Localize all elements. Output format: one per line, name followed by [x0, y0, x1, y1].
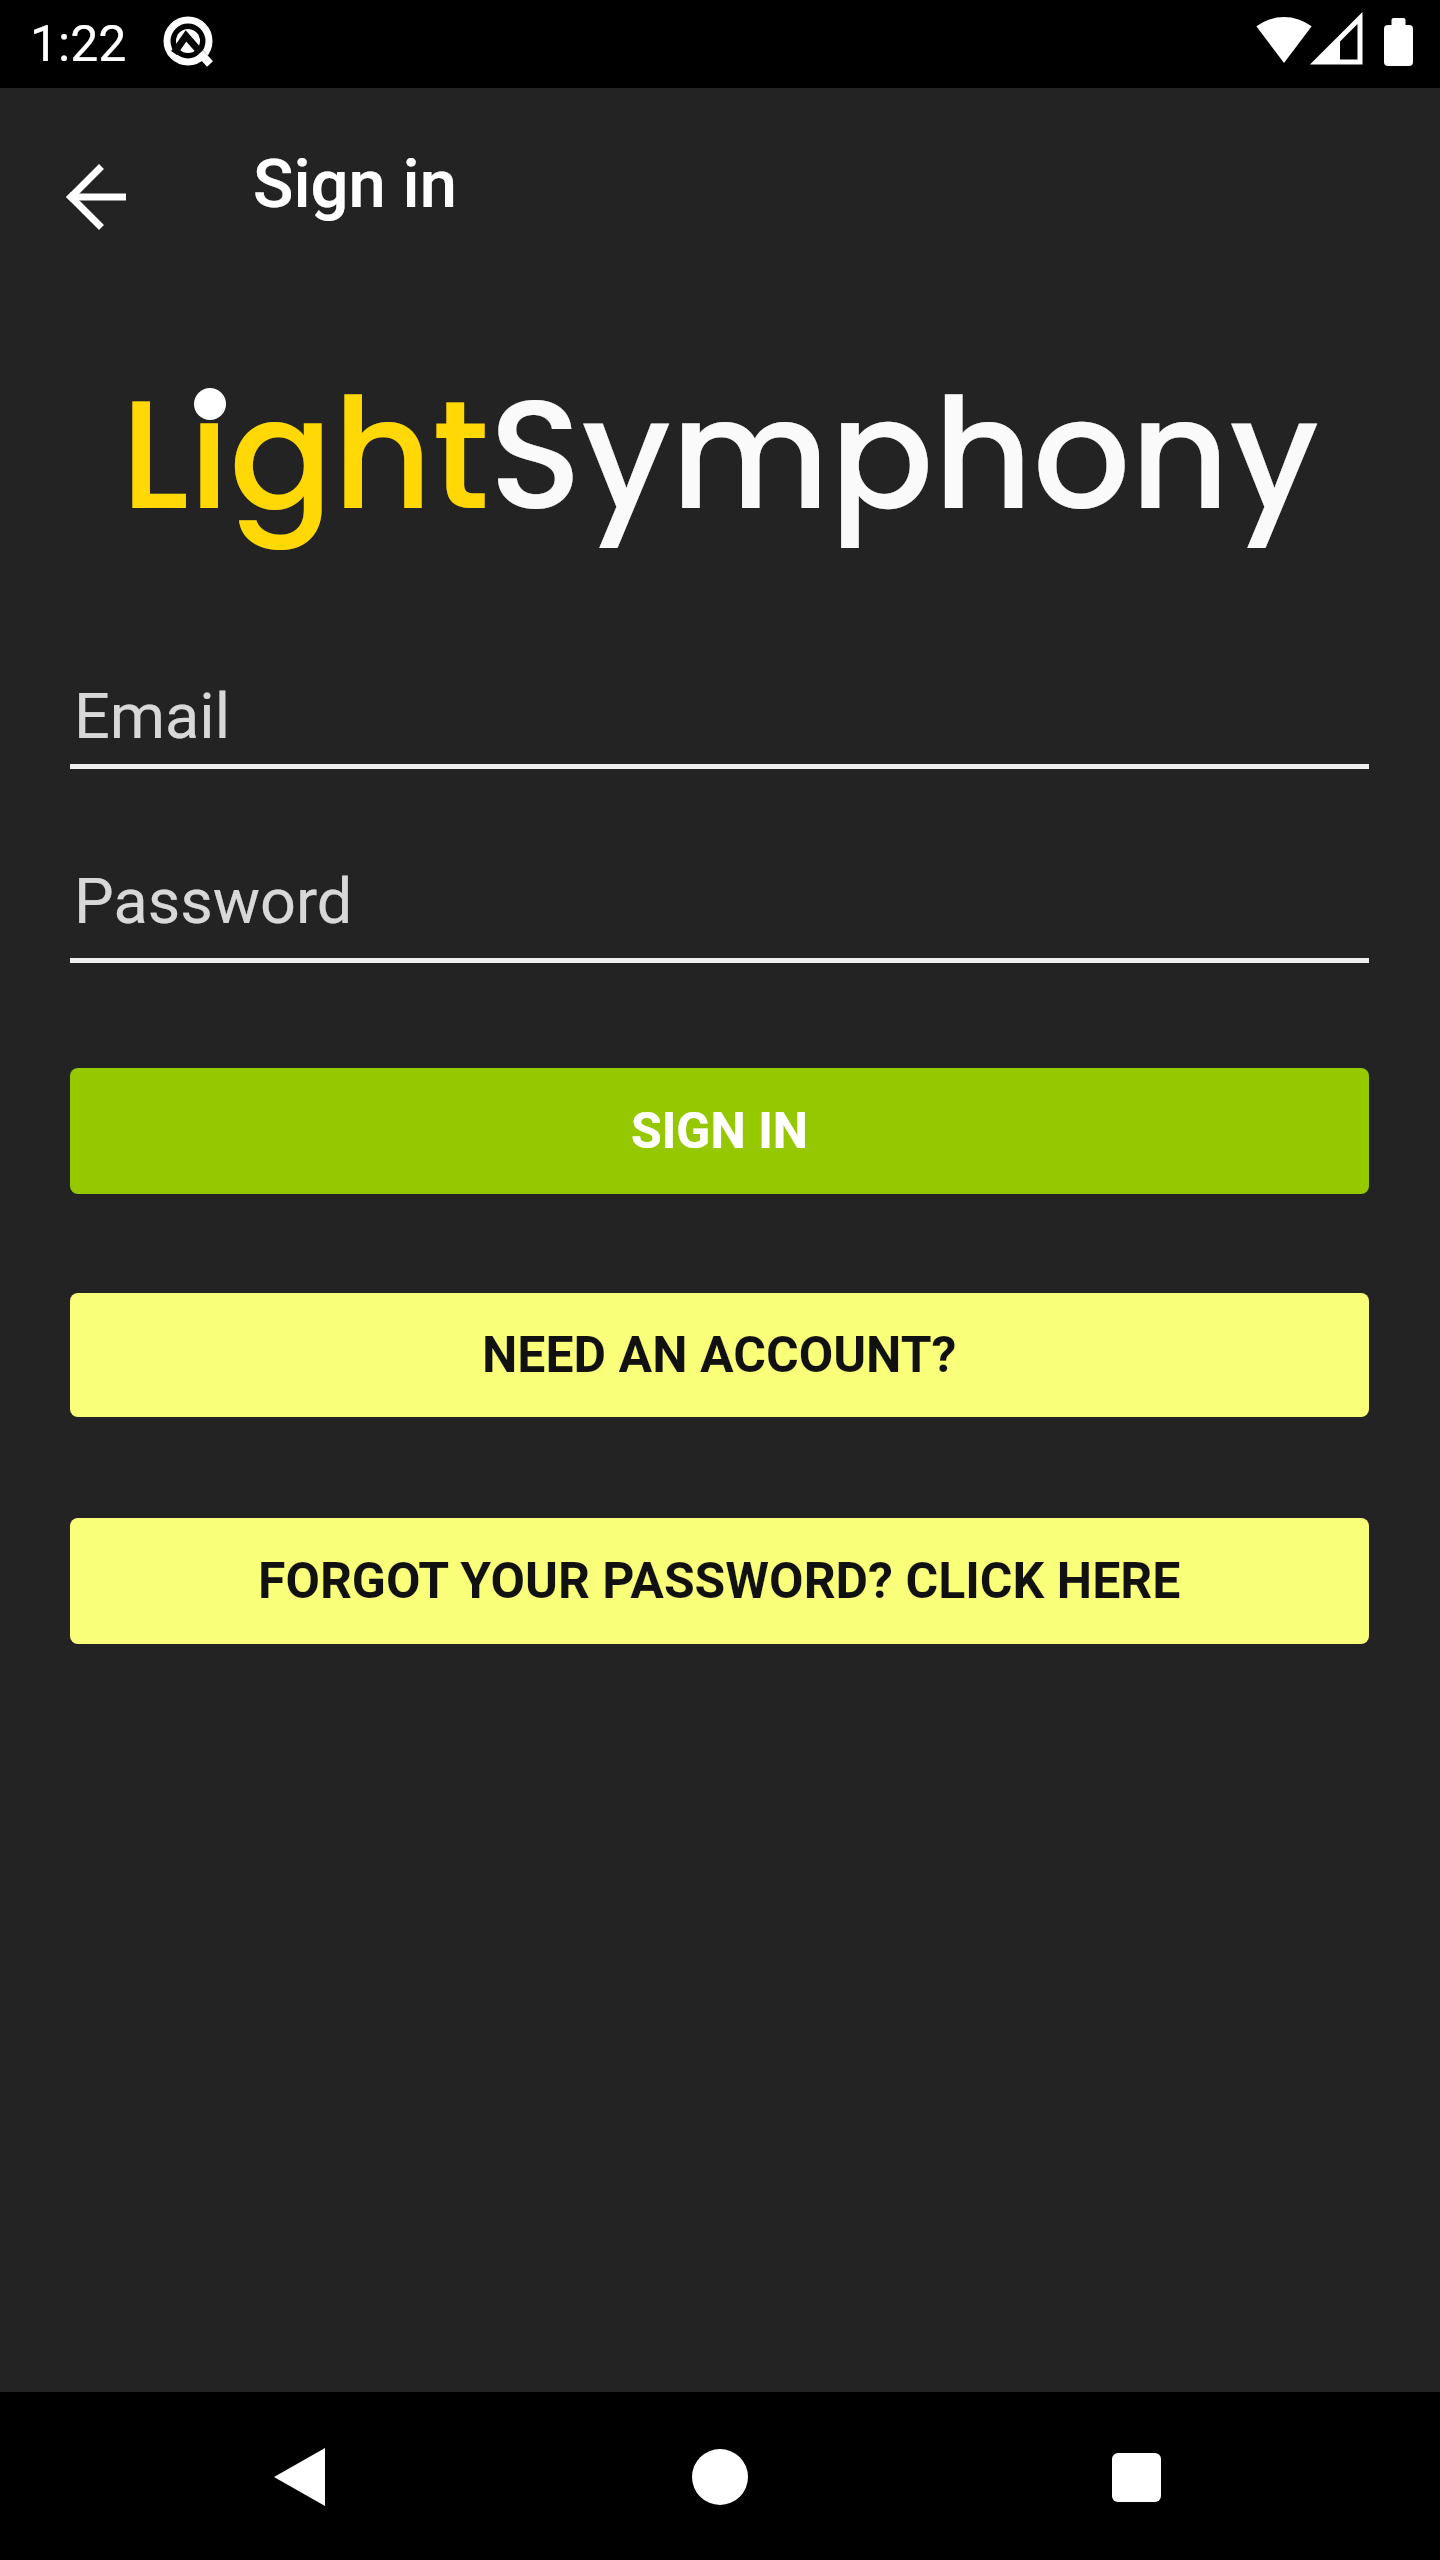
staticText: SIGN IN: [631, 1102, 809, 1161]
button[interactable]: Password: [70, 845, 1369, 963]
button[interactable]: [47, 145, 151, 249]
button[interactable]: SIGN IN: [70, 1068, 1369, 1194]
button[interactable]: FORGOT YOUR PASSWORD? CLICK HERE: [70, 1518, 1369, 1644]
staticText: LightSymphony: [121, 347, 1319, 561]
button[interactable]: NEED AN ACCOUNT?: [70, 1293, 1369, 1417]
button[interactable]: [252, 2429, 348, 2525]
button[interactable]: [1088, 2429, 1184, 2525]
button[interactable]: [672, 2429, 768, 2525]
button[interactable]: Email: [70, 660, 1369, 770]
staticText: FORGOT YOUR PASSWORD? CLICK HERE: [258, 1552, 1181, 1611]
staticText: Password: [74, 865, 353, 939]
staticText: NEED AN ACCOUNT?: [482, 1326, 957, 1385]
staticText: Sign in: [253, 145, 457, 224]
staticText: Email: [74, 680, 230, 754]
staticText: 1:22: [30, 15, 127, 74]
